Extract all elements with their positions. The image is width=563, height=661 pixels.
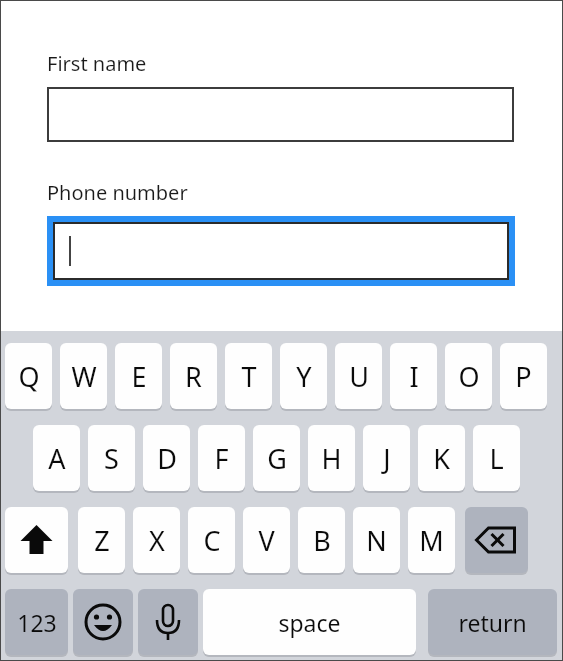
- button[interactable]: Z: [78, 507, 125, 573]
- staticText: X: [149, 522, 165, 559]
- staticText: C: [203, 522, 221, 559]
- button[interactable]: B: [298, 507, 345, 573]
- button[interactable]: P: [500, 343, 547, 409]
- staticText: First name: [47, 50, 147, 77]
- button[interactable]: Backspace: [465, 507, 528, 573]
- staticText: E: [131, 358, 147, 395]
- button[interactable]: T: [225, 343, 272, 409]
- staticText: O: [458, 358, 480, 395]
- staticText: S: [104, 440, 119, 477]
- button[interactable]: O: [445, 343, 492, 409]
- button[interactable]: S: [88, 425, 135, 491]
- button[interactable]: [47, 87, 514, 142]
- staticText: return: [458, 607, 527, 638]
- staticText: A: [48, 440, 66, 477]
- staticText: J: [383, 440, 391, 477]
- button[interactable]: R: [170, 343, 217, 409]
- button[interactable]: X: [133, 507, 180, 573]
- button[interactable]: A: [33, 425, 80, 491]
- button[interactable]: space: [203, 589, 416, 655]
- staticText: G: [267, 440, 287, 477]
- button[interactable]: D: [143, 425, 190, 491]
- staticText: U: [349, 358, 369, 395]
- staticText: 123: [17, 607, 57, 638]
- staticText: D: [157, 440, 177, 477]
- button[interactable]: Emoji: [73, 589, 133, 655]
- button[interactable]: C: [188, 507, 235, 573]
- staticText: B: [313, 522, 331, 559]
- staticText: P: [515, 358, 532, 395]
- staticText: M: [419, 522, 444, 559]
- staticText: Y: [296, 358, 312, 395]
- button[interactable]: J: [363, 425, 410, 491]
- button[interactable]: K: [418, 425, 465, 491]
- button[interactable]: V: [243, 507, 290, 573]
- staticText: L: [489, 440, 504, 477]
- staticText: T: [241, 358, 257, 395]
- staticText: Phone number: [47, 179, 188, 206]
- staticText: V: [258, 522, 275, 559]
- button[interactable]: L: [473, 425, 520, 491]
- button[interactable]: 123: [5, 589, 68, 655]
- staticText: F: [214, 440, 229, 477]
- button[interactable]: G: [253, 425, 300, 491]
- button[interactable]: Voice input: [138, 589, 198, 655]
- staticText: K: [433, 440, 450, 477]
- staticText: I: [409, 358, 419, 395]
- button[interactable]: Q: [5, 343, 52, 409]
- staticText: R: [185, 358, 202, 395]
- staticText: W: [71, 358, 97, 395]
- button[interactable]: E: [115, 343, 162, 409]
- button[interactable]: F: [198, 425, 245, 491]
- staticText: Q: [18, 358, 40, 395]
- button[interactable]: return: [428, 589, 557, 655]
- staticText: N: [366, 522, 387, 559]
- button[interactable]: M: [408, 507, 455, 573]
- button[interactable]: H: [308, 425, 355, 491]
- button[interactable]: Shift: [5, 507, 68, 573]
- button[interactable]: Y: [280, 343, 327, 409]
- button[interactable]: I: [390, 343, 437, 409]
- button[interactable]: W: [60, 343, 107, 409]
- staticText: space: [278, 607, 341, 638]
- button[interactable]: [47, 216, 515, 286]
- button[interactable]: N: [353, 507, 400, 573]
- staticText: H: [321, 440, 342, 477]
- button[interactable]: U: [335, 343, 382, 409]
- staticText: Z: [94, 522, 110, 559]
